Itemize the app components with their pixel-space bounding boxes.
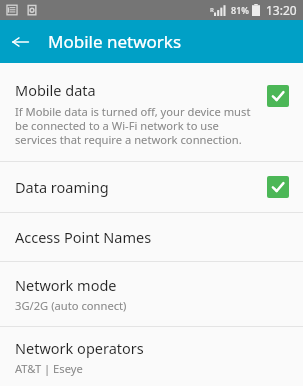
staticText: Access Point Names: [15, 227, 152, 247]
staticText: Network mode: [15, 275, 117, 295]
staticText: Data roaming: [15, 177, 267, 197]
button[interactable]: Mobile data: [0, 63, 303, 161]
staticText: If Mobile data is turned off, your devic…: [15, 104, 259, 147]
staticText: AT&T | Eseye: [15, 361, 83, 376]
button[interactable]: Access Point Names: [0, 213, 303, 261]
button[interactable]: Network mode: [0, 262, 303, 326]
button[interactable]: Back: [0, 22, 40, 62]
staticText: Network operators: [15, 338, 144, 358]
staticText: R: [210, 6, 214, 14]
button[interactable]: [267, 85, 289, 107]
staticText: 3G/2G (auto connect): [15, 298, 127, 313]
button[interactable]: Network operators: [0, 327, 303, 386]
staticText: 13:20: [266, 2, 297, 18]
staticText: 81%: [231, 4, 249, 16]
staticText: Mobile networks: [48, 30, 182, 53]
button[interactable]: [267, 176, 289, 198]
staticText: Mobile data: [15, 80, 96, 100]
button[interactable]: Data roaming: [0, 162, 303, 212]
